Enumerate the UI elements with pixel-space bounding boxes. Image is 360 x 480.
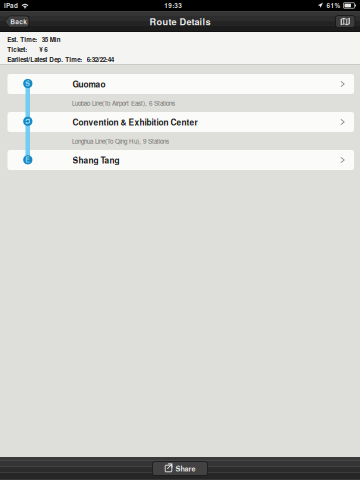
- staticText: Convention & Exhibition Center: [72, 116, 197, 128]
- staticText: 6:32/22:44: [87, 55, 114, 64]
- staticText: Ticket:: [7, 45, 27, 54]
- staticText: Share: [175, 463, 195, 474]
- button[interactable]: Share: [152, 461, 207, 475]
- staticText: Longhua Line(To Qing Hu), 9 Stations: [72, 136, 169, 145]
- staticText: Back: [10, 17, 27, 26]
- staticText: 61%: [326, 1, 340, 10]
- staticText: 19:33: [164, 1, 182, 10]
- button[interactable]: Convention & Exhibition Center: [0, 112, 346, 132]
- staticText: E: [25, 155, 30, 164]
- button[interactable]: Guomao: [0, 74, 346, 94]
- button[interactable]: Back: [4, 15, 29, 27]
- button[interactable]: Map: [335, 16, 355, 27]
- staticText: S: [25, 78, 30, 88]
- staticText: Est. Time:: [7, 35, 37, 44]
- staticText: Luobao Line(To Airport East), 6 Stations: [72, 98, 175, 107]
- staticText: iPad: [4, 1, 18, 10]
- staticText: ¥ 6: [39, 45, 47, 54]
- staticText: 35 Min: [42, 35, 61, 44]
- staticText: Route Details: [149, 15, 210, 28]
- staticText: Guomao: [72, 78, 105, 90]
- staticText: Shang Tang: [72, 154, 119, 166]
- button[interactable]: Shang Tang: [0, 150, 346, 170]
- staticText: Earliest/Latest Dep. Time:: [7, 55, 82, 64]
